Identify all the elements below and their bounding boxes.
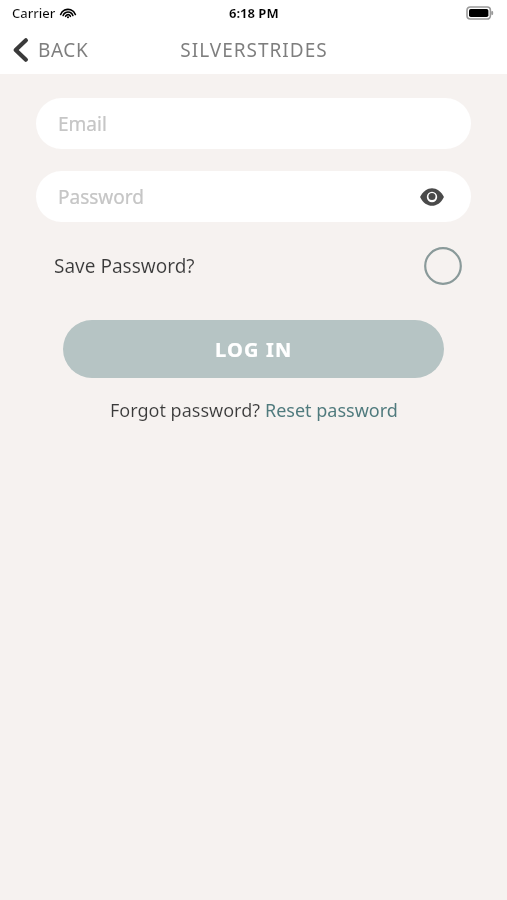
button[interactable]: Show password (415, 180, 449, 214)
button[interactable]: BACK (0, 26, 103, 74)
staticText: BACK (38, 37, 89, 63)
staticText: 6:18 PM (229, 4, 279, 22)
staticText: Password (58, 184, 144, 210)
button[interactable]: Email (36, 98, 471, 149)
staticText: Email (58, 111, 107, 137)
button[interactable]: Password (36, 171, 471, 222)
staticText: SILVERSTRIDES (180, 37, 328, 63)
button[interactable]: LOG IN (63, 320, 444, 378)
staticText: Reset password (265, 398, 398, 423)
staticText: Save Password? (54, 253, 195, 279)
button[interactable]: Save Password? (36, 238, 471, 294)
staticText: Carrier (12, 4, 56, 22)
staticText: LOG IN (215, 336, 293, 363)
button[interactable]: Reset password (265, 398, 398, 423)
staticText: Forgot password? (110, 398, 265, 423)
